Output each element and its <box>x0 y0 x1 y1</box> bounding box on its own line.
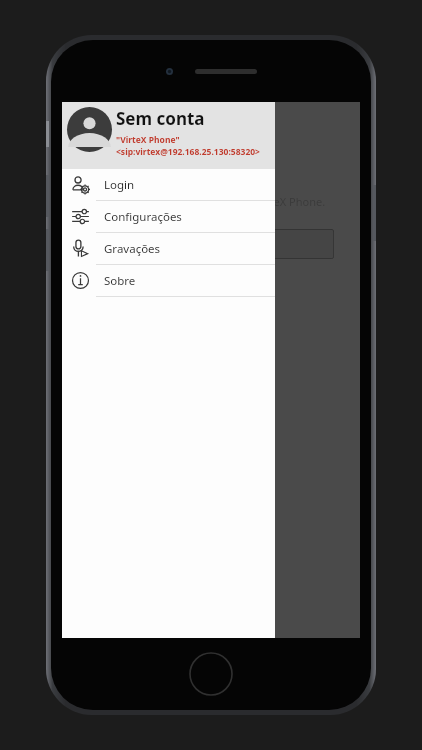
staticText: Configurações <box>104 209 182 225</box>
button[interactable]: Configurações <box>62 201 275 232</box>
staticText: LOGIN <box>192 112 252 138</box>
button[interactable]: Sem conta <box>62 102 275 169</box>
button[interactable]: Login <box>62 169 275 200</box>
staticText: Sem conta <box>116 107 205 130</box>
staticText: Conecte-se ao VirteX Phone. <box>180 194 326 209</box>
button[interactable]: Sobre <box>62 265 275 296</box>
staticText: <sip:virtex@192.168.25.130:58320> <box>116 146 260 158</box>
button[interactable]: Gravações <box>62 233 275 264</box>
staticText: Gravações <box>104 241 161 257</box>
staticText: Login <box>104 177 135 193</box>
staticText: Sobre <box>104 273 136 289</box>
staticText: "VirteX Phone" <box>116 134 180 146</box>
